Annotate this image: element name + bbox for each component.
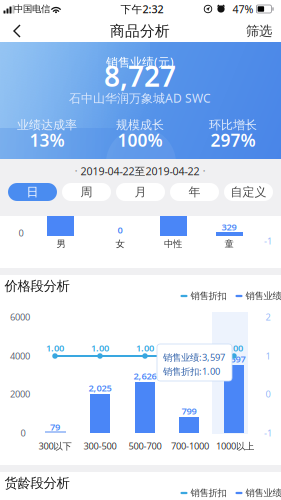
staticText: 男 (56, 238, 65, 250)
staticText: 1.00 (46, 342, 64, 354)
staticText: 环比增长 (209, 118, 257, 132)
staticText: 女 (115, 238, 124, 250)
staticText: 自定义 (230, 185, 266, 199)
staticText: 童 (224, 238, 233, 250)
staticText: 2000 (10, 388, 30, 400)
staticText: 石中山华润万象城AD SWC (69, 90, 211, 106)
staticText: 销售业绩 (245, 290, 281, 302)
staticText: 6000 (10, 311, 30, 323)
staticText: 2019-04-22至2019-04-22 (80, 164, 199, 178)
staticText: · (74, 163, 77, 179)
staticText: 500-700 (128, 440, 161, 452)
staticText: 销售业绩:3,597 (163, 351, 225, 363)
button[interactable]: 筛选 (244, 20, 274, 42)
staticText: 销售折扣 (190, 290, 226, 302)
staticText: 下午2:32 (120, 2, 163, 16)
staticText: 0 (265, 388, 270, 400)
staticText: 2 (265, 311, 270, 323)
staticText: 规模成长 (116, 118, 164, 132)
staticText: 年 (188, 185, 200, 199)
staticText: 中性 (164, 238, 182, 250)
staticText: 8,727 (104, 57, 176, 95)
staticText: 商品分析 (110, 22, 170, 40)
staticText: 筛选 (246, 23, 272, 39)
staticText: 1.00 (136, 342, 154, 354)
staticText: 100% (117, 128, 162, 151)
staticText: 销售折扣 (190, 487, 226, 499)
staticText: 297% (210, 128, 255, 151)
staticText: 2,626 (133, 370, 156, 382)
staticText: 价格段分析 (4, 278, 69, 294)
staticText: 业绩达成率 (17, 118, 77, 132)
button[interactable]: Back (2, 20, 32, 42)
staticText: 0 (18, 227, 23, 239)
staticText: 1.00 (91, 342, 109, 354)
staticText: 3,597 (222, 353, 245, 365)
staticText: -1 (264, 427, 272, 439)
button[interactable]: 年 (170, 183, 219, 201)
staticText: 销售折扣:1.00 (163, 365, 220, 377)
staticText: 799 (181, 405, 196, 417)
staticText: -1 (264, 235, 272, 247)
staticText: 300以下 (38, 440, 71, 452)
staticText: 700-1000 (171, 440, 209, 452)
staticText: 329 (221, 221, 236, 233)
staticText: 13% (29, 128, 64, 151)
staticText: 1.00 (225, 342, 243, 354)
button[interactable]: 月 (116, 183, 165, 201)
staticText: 日 (26, 185, 38, 199)
button[interactable]: 周 (62, 183, 111, 201)
staticText: 2,025 (88, 382, 111, 394)
staticText: 1 (265, 350, 270, 362)
staticText: 0 (117, 224, 122, 236)
staticText: 销售业绩(元) (106, 54, 174, 70)
staticText: 47% (232, 2, 253, 16)
button[interactable]: 日 (8, 183, 57, 201)
staticText: 月 (134, 185, 146, 199)
staticText: 周 (80, 185, 92, 199)
staticText: 4000 (10, 350, 30, 362)
staticText: 销售业绩 (245, 487, 281, 499)
button[interactable]: 自定义 (224, 183, 273, 201)
staticText: 0 (20, 427, 25, 439)
staticText: 1.00 (180, 342, 198, 354)
staticText: 79 (50, 421, 60, 433)
staticText: 货龄段分析 (4, 475, 69, 491)
staticText: · (202, 163, 205, 179)
staticText: 中国电信 (14, 3, 50, 15)
staticText: 300-500 (83, 440, 116, 452)
staticText: 1000以上 (216, 440, 254, 452)
